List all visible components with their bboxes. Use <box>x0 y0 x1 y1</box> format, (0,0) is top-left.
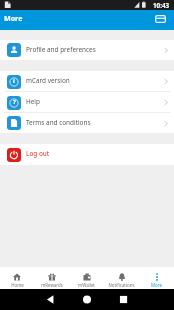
button[interactable]: i <box>0 71 174 92</box>
staticText: More <box>151 282 162 288</box>
button[interactable]: ? <box>0 92 174 113</box>
button[interactable]: Home <box>0 267 34 289</box>
button[interactable]: Profile and preferences <box>0 40 174 60</box>
button[interactable]: More <box>139 267 174 289</box>
staticText: Terms and conditions <box>26 118 91 127</box>
button[interactable]: Log out <box>0 144 174 165</box>
button[interactable]: Notifications <box>104 267 139 289</box>
staticText: mWallet <box>78 282 95 288</box>
button[interactable]: mCard <box>152 11 168 27</box>
staticText: More <box>4 13 23 23</box>
button[interactable]: Terms and conditions <box>0 113 174 133</box>
staticText: mRewards <box>41 282 63 288</box>
staticText: Log out <box>26 149 50 158</box>
staticText: i <box>13 77 15 85</box>
staticText: Profile and preferences <box>26 45 96 54</box>
staticText: ? <box>13 98 16 106</box>
staticText: Help <box>26 97 40 106</box>
staticText: Home <box>11 282 24 288</box>
staticText: mCard version <box>26 76 70 85</box>
button[interactable]: mWallet <box>69 267 104 289</box>
button[interactable]: mRewards <box>34 267 69 289</box>
staticText: 10:43 <box>153 1 170 10</box>
staticText: Notifications <box>108 282 135 288</box>
